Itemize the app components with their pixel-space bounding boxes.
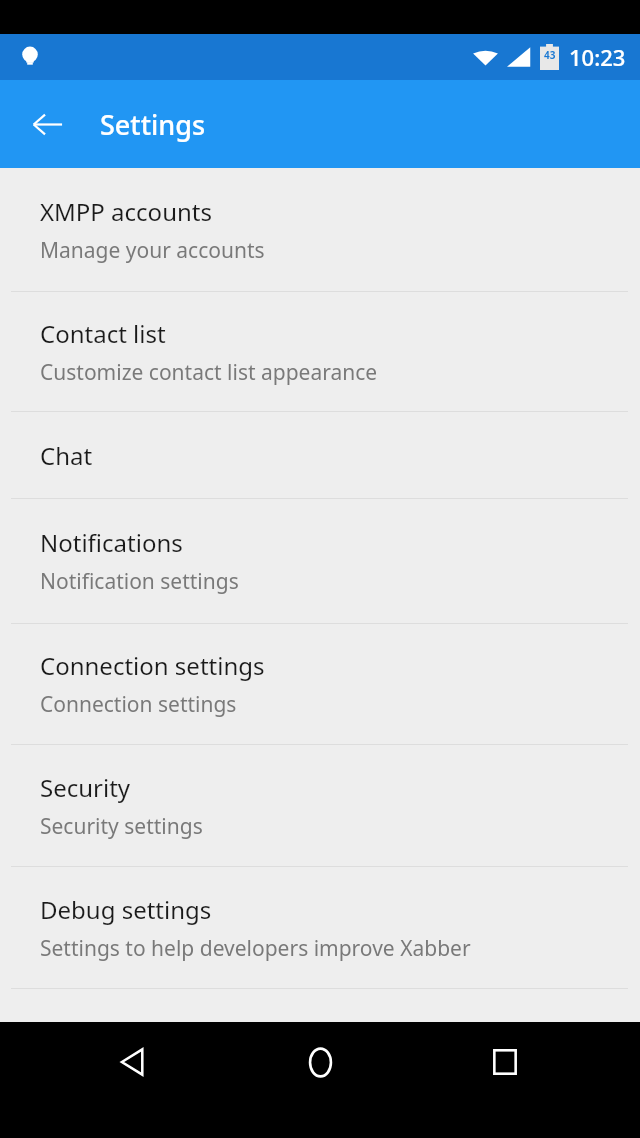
button[interactable]: Debug settings	[0, 867, 640, 988]
button[interactable]: Contact list	[0, 292, 640, 411]
staticText: Security	[40, 771, 131, 804]
staticText: Notification settings	[40, 567, 239, 596]
staticText: Contact list	[40, 317, 166, 350]
button[interactable]: Home	[290, 1032, 350, 1092]
staticText: 10:23	[569, 42, 626, 72]
button[interactable]: Back	[103, 1032, 163, 1092]
staticText: Connection settings	[40, 649, 265, 682]
button[interactable]: Notifications	[0, 499, 640, 623]
staticText: XMPP accounts	[40, 195, 212, 228]
staticText: Chat	[40, 439, 93, 472]
staticText: Settings to help developers improve Xabb…	[40, 934, 471, 963]
staticText: Debug settings	[40, 893, 212, 926]
staticText: 43	[544, 48, 556, 62]
staticText: Security settings	[40, 812, 203, 841]
staticText: Settings	[100, 106, 206, 143]
staticText: Notifications	[40, 526, 183, 559]
staticText: Customize contact list appearance	[40, 358, 378, 387]
button[interactable]: XMPP accounts	[0, 168, 640, 291]
button[interactable]: Recent apps	[475, 1032, 535, 1092]
staticText: Manage your accounts	[40, 236, 265, 265]
button[interactable]: Back	[21, 98, 73, 150]
button[interactable]: Chat	[0, 412, 640, 498]
button[interactable]: Security	[0, 745, 640, 866]
staticText: Connection settings	[40, 690, 237, 719]
button[interactable]: Connection settings	[0, 624, 640, 744]
